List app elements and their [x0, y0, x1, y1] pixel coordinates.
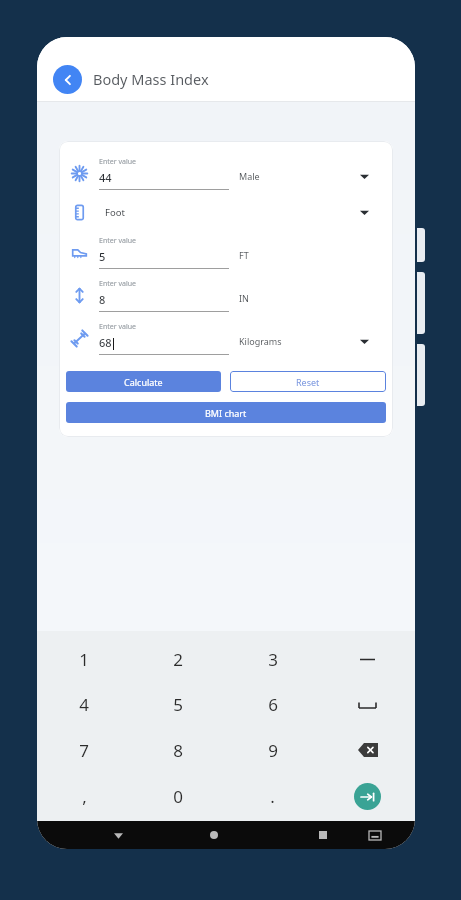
button[interactable]: Calculate [66, 371, 221, 392]
button[interactable]: 0 [131, 773, 225, 819]
button[interactable]: Enter value [59, 151, 393, 194]
staticText: 5 [173, 693, 183, 716]
staticText: Enter value [99, 279, 136, 289]
staticText: Enter value [99, 157, 136, 167]
staticText: 9 [268, 739, 278, 762]
button[interactable]: 9 [225, 727, 320, 773]
staticText: FT [239, 249, 249, 261]
staticText: 2 [173, 648, 183, 671]
button[interactable]: . [225, 773, 320, 819]
button[interactable]: space [320, 682, 415, 727]
button[interactable]: , [37, 773, 131, 819]
button[interactable]: BMI chart [66, 402, 386, 423]
button[interactable]: 3 [225, 637, 320, 682]
staticText: Male [239, 170, 260, 182]
button[interactable]: enter [320, 773, 415, 819]
button[interactable]: 5 [131, 682, 225, 727]
staticText: IN [239, 292, 249, 304]
button[interactable]: minus [320, 637, 415, 682]
staticText: . [270, 785, 275, 808]
button[interactable]: 2 [131, 637, 225, 682]
button[interactable]: Hide keyboard [362, 822, 388, 848]
staticText: 5 [99, 249, 106, 264]
staticText: 1 [79, 648, 89, 671]
staticText: Reset [296, 376, 320, 388]
staticText: 8 [173, 739, 183, 762]
staticText: 8 [99, 292, 106, 307]
button[interactable]: Enter value [59, 273, 393, 316]
button[interactable]: Enter value [59, 316, 393, 359]
button[interactable]: 6 [225, 682, 320, 727]
staticText: Enter value [99, 322, 136, 332]
button[interactable]: 1 [37, 637, 131, 682]
button[interactable]: 7 [37, 727, 131, 773]
staticText: 44 [99, 170, 112, 185]
staticText: Body Mass Index [93, 69, 209, 89]
staticText: Enter value [99, 236, 136, 246]
button[interactable]: Back [105, 822, 131, 848]
staticText: 0 [173, 785, 183, 808]
button[interactable]: Reset [230, 371, 386, 392]
staticText: 7 [79, 739, 89, 762]
staticText: 4 [79, 693, 89, 716]
button[interactable]: Back [53, 65, 82, 94]
staticText: 3 [268, 648, 278, 671]
button[interactable]: Recents [310, 822, 336, 848]
button[interactable]: del [320, 727, 415, 773]
button[interactable]: 8 [131, 727, 225, 773]
staticText: Foot [105, 206, 125, 219]
staticText: Kilograms [239, 335, 282, 347]
button[interactable]: Enter value [59, 230, 393, 273]
button[interactable]: Foot [59, 194, 393, 230]
button[interactable]: Home [201, 822, 227, 848]
staticText: , [82, 785, 87, 808]
staticText: 6 [268, 693, 278, 716]
button[interactable]: 4 [37, 682, 131, 727]
staticText: Calculate [124, 376, 163, 388]
staticText: BMI chart [205, 407, 247, 419]
staticText: 68 [99, 335, 112, 350]
